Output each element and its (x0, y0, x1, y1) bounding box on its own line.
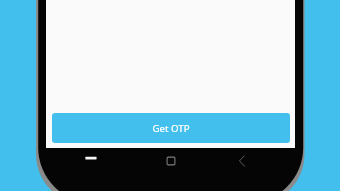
button[interactable]: Back (225, 152, 259, 170)
button[interactable]: Recent apps (74, 148, 108, 167)
button[interactable]: Get OTP (52, 113, 290, 143)
staticText: Get OTP (152, 122, 190, 135)
button[interactable]: Home (154, 152, 188, 170)
